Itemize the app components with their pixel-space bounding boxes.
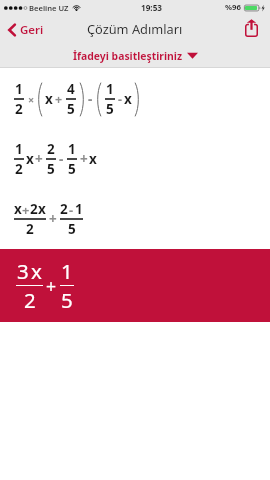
staticText: 2 — [26, 220, 34, 238]
staticText: 2 — [47, 140, 55, 158]
staticText: + — [46, 274, 57, 298]
staticText: 2 — [15, 100, 23, 118]
button[interactable]: 1 — [0, 68, 270, 129]
staticText: x — [26, 150, 34, 168]
staticText: × — [28, 92, 35, 107]
button[interactable]: 1 — [0, 129, 270, 189]
staticText: + — [80, 150, 88, 168]
button[interactable]: Share — [237, 18, 270, 41]
staticText: 1 — [75, 200, 83, 218]
button[interactable]: 3 — [0, 249, 270, 322]
staticText: 1 — [15, 80, 23, 98]
staticText: Beeline UZ — [29, 3, 69, 13]
staticText: + — [49, 210, 57, 228]
staticText: - — [59, 150, 64, 168]
staticText: x — [45, 90, 53, 108]
staticText: 3 — [17, 257, 29, 285]
staticText: 1 — [106, 80, 114, 98]
button[interactable]: x — [0, 189, 270, 249]
staticText: x — [38, 200, 46, 218]
staticText: x — [124, 90, 132, 108]
staticText: 5 — [68, 160, 76, 178]
staticText: - — [88, 90, 93, 108]
staticText: Çözüm Adımları — [87, 20, 183, 37]
staticText: 5 — [61, 286, 73, 314]
staticText: 2 — [60, 200, 68, 218]
staticText: + — [35, 150, 43, 168]
staticText: 19:53 — [141, 2, 163, 13]
staticText: x — [14, 200, 22, 218]
staticText: 5 — [47, 160, 55, 178]
staticText: Geri — [20, 22, 44, 38]
staticText: 2 — [30, 200, 38, 218]
staticText: İfadeyi basitleştiriniz — [73, 49, 183, 63]
staticText: %96 — [225, 2, 241, 13]
staticText: 1 — [68, 140, 76, 158]
button[interactable]: İfadeyi basitleştiriniz — [0, 44, 270, 67]
button[interactable]: Geri — [0, 19, 52, 41]
staticText: x — [89, 150, 97, 168]
staticText: 2 — [24, 286, 36, 314]
staticText: 2 — [15, 160, 23, 178]
staticText: 5 — [68, 220, 76, 238]
staticText: 5 — [106, 100, 114, 118]
staticText: 1 — [15, 140, 23, 158]
staticText: 4 — [67, 80, 75, 98]
staticText: - — [118, 91, 122, 108]
staticText: + — [55, 91, 63, 108]
staticText: x — [31, 257, 42, 285]
staticText: 1 — [61, 257, 73, 285]
staticText: 5 — [67, 100, 75, 118]
staticText: + — [22, 201, 30, 218]
staticText: - — [69, 201, 74, 218]
